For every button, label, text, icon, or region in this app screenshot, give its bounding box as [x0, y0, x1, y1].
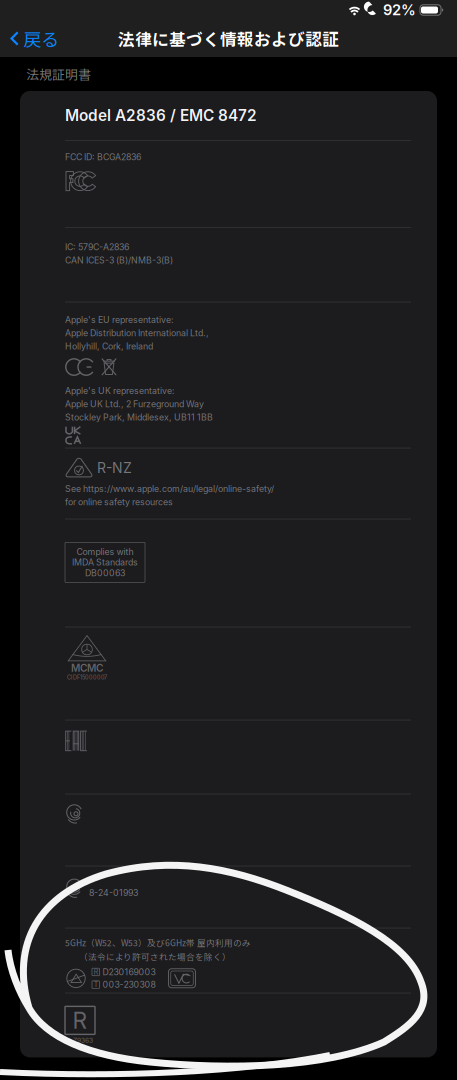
staticText: CIDF15000007	[67, 674, 107, 681]
staticText: Model A2836 / EMC 8472	[65, 106, 257, 125]
staticText: DB00063	[85, 568, 125, 578]
staticText: T	[94, 980, 98, 989]
staticText: 戻る	[23, 25, 59, 52]
staticText: H-Z9363	[65, 1036, 93, 1044]
staticText: IMDA Standards	[72, 557, 138, 568]
staticText: Apple's EU representative:	[65, 314, 174, 325]
staticText: 92%	[383, 1, 416, 19]
staticText: Apple Distribution International Ltd.,	[65, 328, 209, 338]
staticText: Apple's UK representative:	[65, 385, 175, 396]
staticText: MCMC	[71, 662, 103, 674]
staticText: Hollyhill, Cork, Ireland	[65, 341, 153, 351]
staticText: CAN ICES-3 (B)/NMB-3(B)	[65, 255, 173, 265]
staticText: R	[94, 968, 98, 976]
staticText: 8-24-01993	[89, 887, 138, 898]
staticText: 003-230308	[102, 979, 155, 990]
staticText: IC: 579C-A2836	[65, 242, 129, 252]
staticText: for online safety resources	[65, 497, 173, 507]
staticText: （法令により許可された場合を除く）	[79, 950, 231, 963]
staticText: 法規証明書	[26, 65, 91, 83]
staticText: See https://www.apple.com/au/legal/onlin…	[65, 483, 274, 494]
staticText: 法律に基づく情報および認証	[118, 26, 339, 50]
staticText: R	[72, 1007, 87, 1034]
button[interactable]: 戻る	[0, 20, 69, 57]
staticText: D230169003	[102, 967, 155, 977]
staticText: R-NZ	[97, 459, 132, 476]
staticText: Complies with	[76, 546, 133, 557]
staticText: Apple UK Ltd., 2 Furzeground Way	[65, 399, 204, 409]
staticText: 5GHz（W52、W53）及び6GHz帯 屋内利用のみ	[65, 936, 251, 949]
staticText: FCC ID: BCGA2836	[65, 152, 141, 162]
staticText: Stockley Park, Middlesex, UB11 1BB	[65, 412, 213, 423]
